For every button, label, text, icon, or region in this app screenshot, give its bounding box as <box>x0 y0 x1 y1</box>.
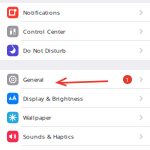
staticText: 1 <box>125 75 129 84</box>
button[interactable]: Display & Brightness <box>0 89 150 108</box>
button[interactable]: Wallpaper <box>0 108 150 127</box>
button[interactable]: Sounds & Haptics <box>0 127 150 146</box>
button[interactable]: Do Not Disturb <box>0 41 150 60</box>
staticText: Control Center <box>23 27 65 35</box>
staticText: Sounds & Haptics <box>23 132 74 140</box>
staticText: Wallpaper <box>23 113 51 121</box>
staticText: Notifications <box>23 8 60 16</box>
staticText: Do Not Disturb <box>23 46 66 54</box>
button[interactable]: Notifications <box>0 3 150 22</box>
staticText: Display & Brightness <box>23 94 83 102</box>
staticText: General <box>23 75 44 83</box>
button[interactable]: General <box>0 70 150 89</box>
button[interactable]: Control Center <box>0 22 150 41</box>
